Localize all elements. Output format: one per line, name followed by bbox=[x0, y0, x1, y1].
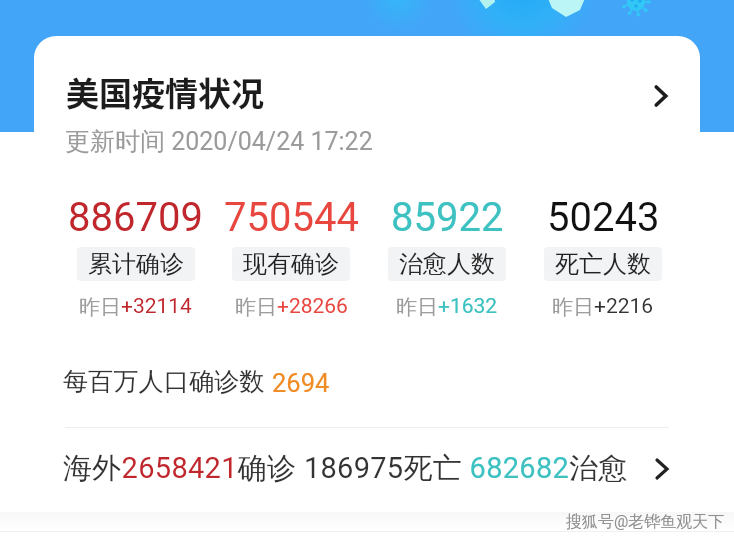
staticText: 美国疫情状况 bbox=[66, 68, 264, 116]
staticText: 昨日 bbox=[79, 294, 121, 320]
staticText: 昨日 bbox=[396, 294, 438, 320]
other: Details bbox=[644, 79, 678, 113]
button[interactable]: 美国疫情状况 bbox=[34, 68, 700, 116]
staticText: 死亡人数 bbox=[555, 249, 651, 279]
staticText: +2216 bbox=[594, 294, 654, 319]
staticText: 累计确诊 bbox=[88, 249, 184, 279]
staticText: 现有确诊 bbox=[243, 249, 339, 279]
staticText: 更新时间 2020/04/24 17:22 bbox=[65, 126, 373, 157]
staticText: 85922 bbox=[391, 194, 504, 241]
staticText: 海外2658421确诊 186975死亡 682682治愈 bbox=[63, 450, 628, 487]
staticText: 2694 bbox=[272, 368, 330, 398]
staticText: 每百万人口确诊数 bbox=[63, 366, 265, 398]
staticText: +1632 bbox=[438, 294, 498, 319]
staticText: +32114 bbox=[121, 294, 192, 319]
staticText: 886709 bbox=[68, 194, 203, 241]
staticText: 750544 bbox=[224, 194, 359, 241]
button[interactable]: 海外2658421确诊 186975死亡 682682治愈 bbox=[34, 442, 700, 494]
other: Overseas details bbox=[647, 454, 677, 484]
staticText: 搜狐号@老铧鱼观天下 bbox=[566, 512, 725, 532]
staticText: 50243 bbox=[547, 194, 660, 241]
staticText: 治愈人数 bbox=[399, 249, 495, 279]
staticText: +28266 bbox=[277, 294, 348, 319]
staticText: 昨日 bbox=[552, 294, 594, 320]
staticText: 昨日 bbox=[235, 294, 277, 320]
